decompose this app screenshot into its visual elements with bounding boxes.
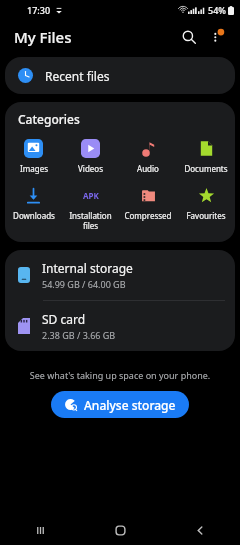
button[interactable]: Search [176, 24, 202, 50]
staticText: Recent files [45, 68, 110, 84]
staticText: Analyse storage [84, 397, 176, 413]
button[interactable]: APK [62, 184, 119, 233]
button[interactable]: Back [160, 515, 240, 545]
staticText: My Files [14, 27, 72, 47]
staticText: 17:30 [27, 4, 51, 16]
button[interactable]: Images [5, 137, 62, 176]
staticText: Videos [78, 163, 103, 174]
staticText: Internal storage [42, 260, 133, 276]
staticText: See what's taking up space on your phone… [0, 369, 240, 381]
button[interactable]: Internal storage [5, 250, 235, 300]
button[interactable]: Analyse storage [51, 391, 189, 418]
button[interactable]: Compressed [119, 184, 177, 223]
button[interactable]: Downloads [5, 184, 62, 223]
staticText: Favourites [186, 210, 226, 221]
staticText: 54% [208, 4, 226, 16]
button[interactable]: Recent files [5, 57, 235, 94]
staticText: SD card [42, 311, 86, 327]
button[interactable]: Documents [177, 137, 235, 176]
staticText: APK [83, 190, 99, 201]
staticText: Installation files [69, 210, 112, 231]
button[interactable]: Favourites [177, 184, 235, 223]
button[interactable]: More options [204, 24, 230, 50]
staticText: 54.99 GB / 64.00 GB [42, 278, 126, 290]
button[interactable]: Home [80, 515, 160, 545]
staticText: Categories [18, 111, 80, 127]
staticText: Documents [184, 163, 228, 174]
button[interactable]: Audio [119, 137, 177, 176]
staticText: 2.38 GB / 3.66 GB [42, 329, 116, 341]
staticText: Downloads [13, 210, 55, 221]
button[interactable]: Videos [62, 137, 119, 176]
button[interactable]: Recents [0, 515, 80, 545]
staticText: Audio [137, 163, 159, 174]
button[interactable]: SD card [5, 301, 235, 351]
staticText: Compressed [124, 210, 172, 221]
staticText: Images [20, 163, 48, 174]
